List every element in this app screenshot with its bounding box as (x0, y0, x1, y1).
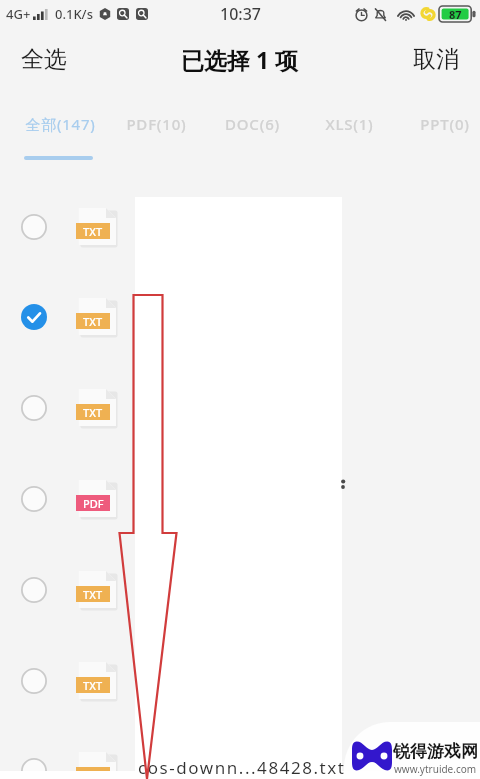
staticText: 取消 (413, 45, 459, 74)
button[interactable]: PDF (0, 453, 480, 544)
staticText: 已选择 1 项 (181, 44, 299, 75)
staticText: TXT (83, 587, 103, 602)
staticText: DOC(6) (225, 114, 280, 134)
staticText: cos-downn...48428.txt (138, 396, 338, 419)
button[interactable]: 全部(147) (12, 96, 108, 162)
staticText: PDF(10) (126, 114, 187, 134)
staticText: PPT(0) (420, 114, 470, 134)
staticText: 全部(147) (25, 114, 96, 134)
staticText: 4G+ (6, 5, 31, 23)
button[interactable]: XLS(1) (301, 96, 397, 162)
staticText: cos-downn...48428.txt (138, 756, 346, 779)
staticText: 全选 (21, 45, 67, 74)
staticText: 10:37 (220, 3, 261, 25)
staticText: cos-downn...48428.txt (138, 669, 338, 692)
button[interactable]: DOC(6) (204, 96, 300, 162)
staticText: cos-downn...48428.txt (138, 578, 338, 601)
staticText: PDF (83, 496, 104, 511)
staticText: 0.1K/s (55, 5, 93, 23)
staticText: cos-downn...48428.txt (138, 759, 338, 779)
button[interactable]: PDF(10) (108, 96, 204, 162)
button[interactable]: PPT(0) (397, 96, 480, 162)
staticText: TXT (83, 224, 103, 239)
button[interactable]: TXT (0, 362, 480, 453)
staticText: TXT (83, 768, 103, 779)
staticText: XLS(1) (325, 114, 374, 134)
staticText: cos-downn...48428.pdf (138, 487, 338, 510)
button[interactable]: TXT (0, 635, 480, 726)
button[interactable]: 全选 (0, 33, 93, 86)
button[interactable]: TXT (0, 725, 480, 779)
staticText: TXT (83, 405, 103, 420)
staticText: TXT (83, 678, 103, 693)
staticText: cos-downn...48428.txt (138, 305, 338, 328)
button[interactable]: 取消 (387, 33, 480, 86)
staticText: 锐得游戏网 (393, 741, 478, 762)
button[interactable]: TXT (0, 181, 480, 272)
staticText: 87 (449, 7, 462, 22)
staticText: www.ytruide.com (394, 762, 477, 776)
staticText: TXT (83, 314, 103, 329)
button[interactable]: TXT (0, 544, 480, 635)
button[interactable]: TXT (0, 271, 480, 362)
